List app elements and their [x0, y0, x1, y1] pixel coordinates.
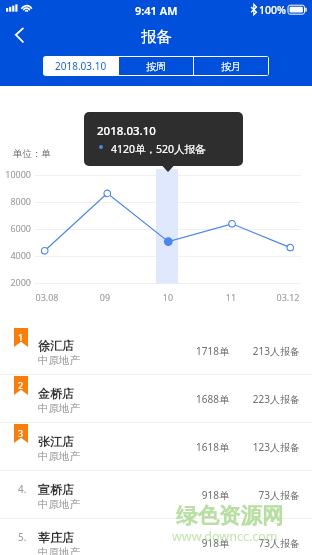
staticText: 223人报备: [240, 392, 300, 406]
button[interactable]: 按周: [119, 57, 193, 75]
staticText: 徐汇店: [38, 338, 74, 353]
staticText: 绿色资源网: [176, 502, 284, 529]
staticText: 10: [148, 291, 188, 303]
staticText: 6000: [0, 222, 31, 234]
staticText: 10000: [0, 168, 31, 180]
staticText: 1618单: [169, 440, 229, 454]
staticText: 918单: [169, 536, 229, 550]
staticText: 1718单: [169, 344, 229, 358]
button[interactable]: 2018.03.10: [44, 57, 118, 75]
staticText: 123人报备: [240, 440, 300, 454]
button[interactable]: 1: [0, 327, 312, 375]
staticText: 报备: [141, 27, 172, 47]
staticText: 03.12: [268, 291, 308, 303]
staticText: 73人报备: [240, 488, 300, 502]
staticText: 9:41 AM: [135, 3, 178, 18]
staticText: 3: [18, 427, 24, 439]
staticText: 03.08: [27, 291, 67, 303]
staticText: 100%: [259, 3, 286, 17]
staticText: 1: [18, 331, 24, 343]
staticText: 2018.03.10: [55, 59, 107, 73]
button[interactable]: 4.: [0, 471, 312, 519]
staticText: 中原地产: [38, 402, 80, 415]
staticText: 4000: [0, 249, 31, 261]
staticText: 张江店: [38, 434, 74, 449]
staticText: 金桥店: [38, 386, 74, 401]
staticText: 918单: [169, 488, 229, 502]
staticText: www.downcc.com: [172, 528, 278, 545]
button[interactable]: 5.: [0, 519, 312, 555]
staticText: 09: [85, 291, 125, 303]
staticText: 1688单: [169, 392, 229, 406]
staticText: 中原地产: [38, 546, 80, 555]
staticText: 4.: [18, 482, 27, 496]
button[interactable]: 3: [0, 423, 312, 471]
staticText: 单位：单: [13, 148, 51, 160]
staticText: 5.: [18, 530, 27, 544]
staticText: 73人报备: [240, 536, 300, 550]
button[interactable]: 按月: [194, 57, 268, 75]
staticText: 4120单，520人报备: [111, 142, 206, 156]
staticText: 宣桥店: [38, 482, 74, 497]
staticText: 2: [18, 379, 24, 391]
staticText: 2018.03.10: [97, 123, 156, 139]
staticText: 莘庄店: [38, 530, 74, 545]
staticText: 中原地产: [38, 450, 80, 463]
staticText: 中原地产: [38, 498, 80, 511]
staticText: 213人报备: [240, 344, 300, 358]
staticText: 按月: [221, 60, 241, 73]
staticText: 11: [211, 291, 251, 303]
staticText: 按周: [146, 60, 166, 73]
button[interactable]: 2: [0, 375, 312, 423]
staticText: 2000: [0, 276, 31, 288]
staticText: 8000: [0, 195, 31, 207]
staticText: 中原地产: [38, 354, 80, 367]
button[interactable]: Back: [0, 25, 36, 61]
